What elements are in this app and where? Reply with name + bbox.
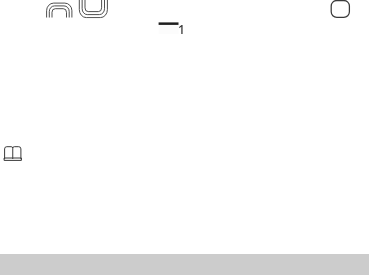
staticText: 1 bbox=[178, 21, 185, 37]
button[interactable] bbox=[158, 20, 185, 35]
button[interactable]: Open book bbox=[0, 139, 369, 167]
other: Open book bbox=[4, 146, 23, 163]
button[interactable]: Title bbox=[44, 0, 110, 20]
button[interactable]: More options bbox=[330, 0, 351, 19]
